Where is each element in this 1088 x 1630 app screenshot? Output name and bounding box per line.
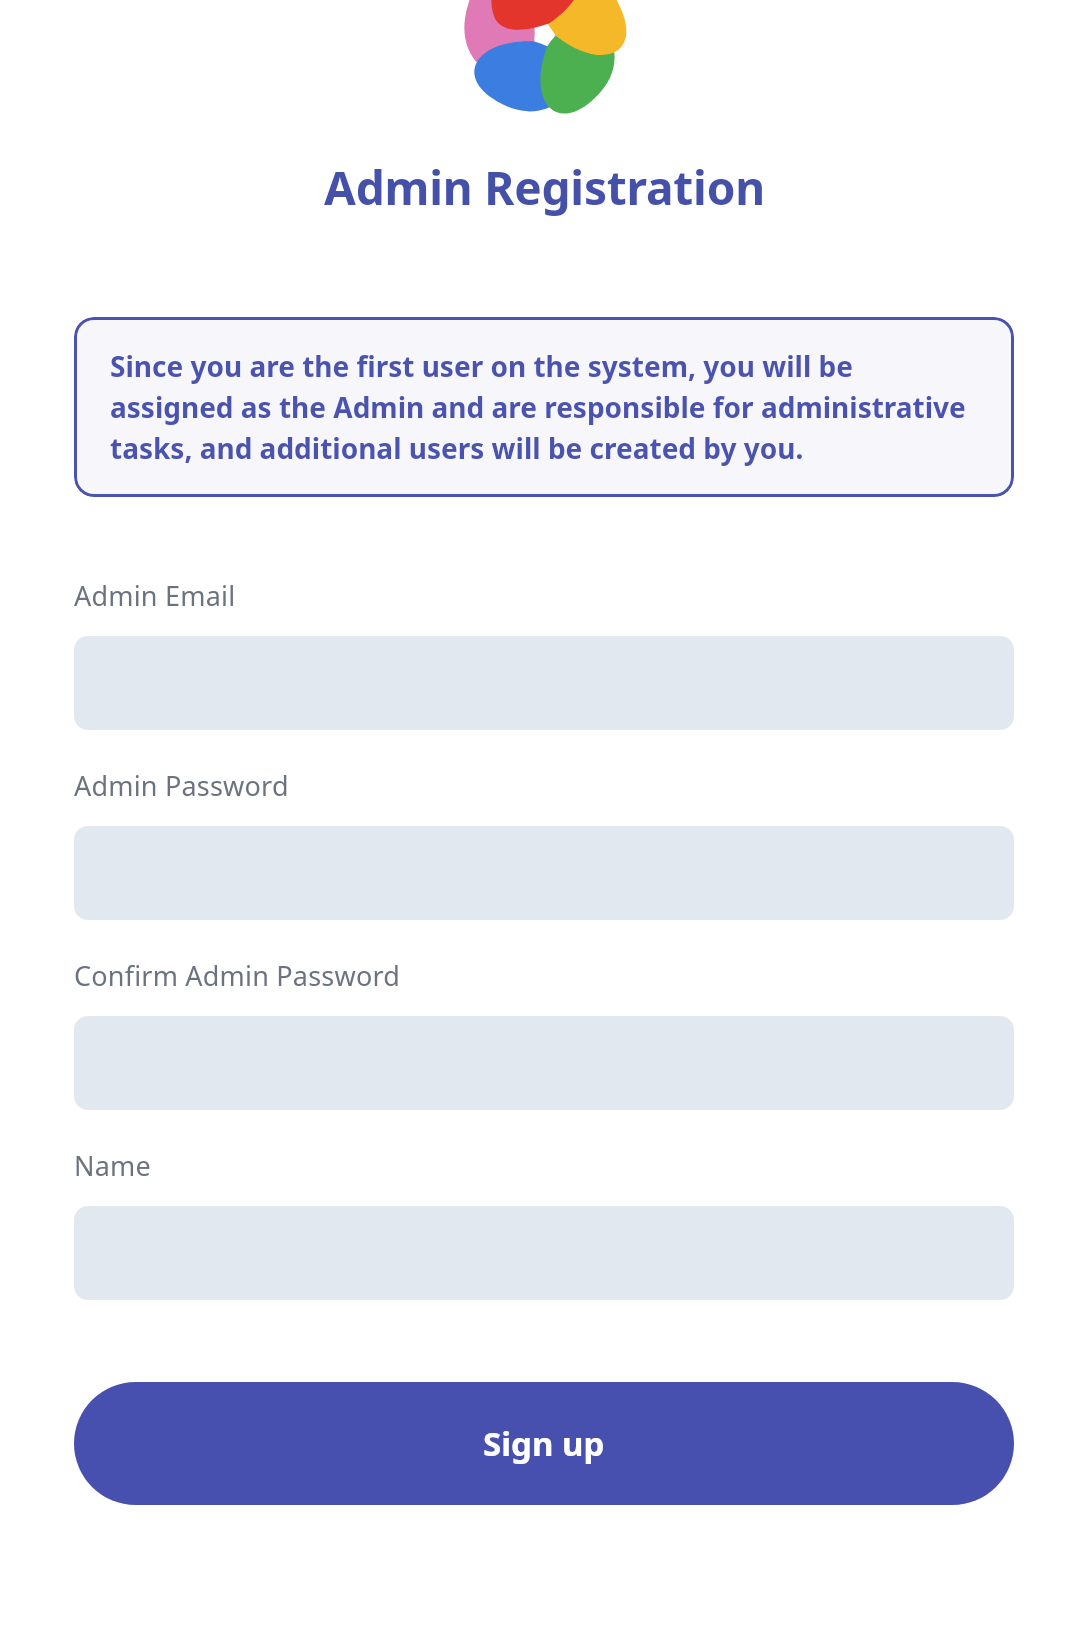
staticText: Admin Email bbox=[74, 577, 236, 614]
staticText: Admin Registration bbox=[324, 156, 765, 219]
staticText: Name bbox=[74, 1147, 151, 1184]
staticText: Sign up bbox=[483, 1421, 605, 1466]
button[interactable]: Sign up bbox=[74, 1382, 1014, 1505]
staticText: Admin Password bbox=[74, 767, 289, 804]
staticText: Confirm Admin Password bbox=[74, 957, 401, 994]
staticText: Since you are the first user on the syst… bbox=[110, 347, 978, 467]
